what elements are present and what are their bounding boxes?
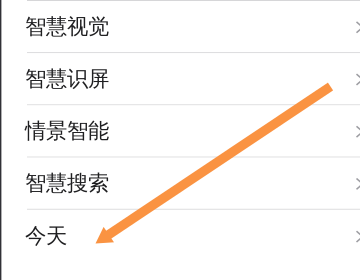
button[interactable]: 情景智能 [0, 105, 360, 158]
button[interactable]: 智慧视觉 [0, 1, 360, 53]
button[interactable]: 今天 [0, 210, 360, 262]
button[interactable]: 智慧识屏 [0, 53, 360, 105]
staticText: 智慧识屏 [25, 66, 109, 92]
staticText: 情景智能 [25, 118, 109, 144]
staticText: 今天 [25, 223, 67, 249]
button[interactable]: 智慧搜索 [0, 158, 360, 210]
staticText: 智慧视觉 [25, 13, 109, 40]
staticText: 智慧搜索 [25, 170, 109, 196]
